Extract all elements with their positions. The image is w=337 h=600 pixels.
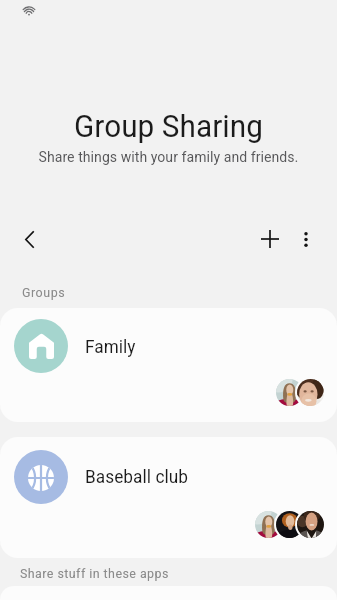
button[interactable]: Family <box>0 308 337 422</box>
staticText: Share things with your family and friend… <box>0 148 337 165</box>
button[interactable]: More options <box>284 217 328 261</box>
staticText: Share stuff in these apps <box>20 566 169 581</box>
staticText: Baseball club <box>85 466 189 487</box>
button[interactable]: Navigate up <box>7 217 51 261</box>
staticText: Groups <box>22 285 66 300</box>
button[interactable]: Baseball club <box>0 437 337 558</box>
button[interactable]: Add group <box>248 217 292 261</box>
staticText: Group Sharing <box>0 108 337 144</box>
staticText: Family <box>85 336 136 357</box>
